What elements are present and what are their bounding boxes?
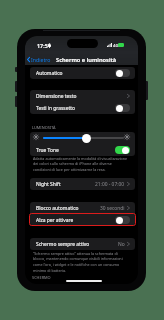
staticText: Testi in grassetto xyxy=(36,105,75,112)
staticText: “Schermo sempre attivo” attenua la scher… xyxy=(33,251,130,273)
button[interactable]: Automatico xyxy=(30,67,135,79)
staticText: Night Shift xyxy=(36,181,61,188)
staticText: 21:00 - 07:00 xyxy=(95,181,125,188)
button[interactable]: Indietro xyxy=(27,55,51,63)
staticText: Indietro xyxy=(31,56,51,63)
staticText: SCHERMO xyxy=(32,275,51,280)
staticText: Blocco automatico xyxy=(36,205,79,212)
staticText: Automatico xyxy=(36,70,63,77)
staticText: 4G xyxy=(113,43,119,49)
staticText: True Tone xyxy=(36,147,59,154)
staticText: Alza per attivare xyxy=(36,217,74,224)
staticText: Adatta automaticamente la modalità di vi… xyxy=(33,156,130,172)
staticText: Dimensione testo xyxy=(36,93,77,100)
button[interactable]: True Tone xyxy=(30,144,135,156)
button[interactable]: Dimensione testo xyxy=(30,90,135,102)
button[interactable]: Schermo sempre attivo xyxy=(30,238,135,250)
staticText: No xyxy=(118,241,125,248)
button[interactable]: Testi in grassetto xyxy=(30,102,135,114)
button[interactable]: Alza per attivare xyxy=(30,214,135,226)
button[interactable]: Night Shift xyxy=(30,178,135,190)
staticText: LUMINOSITÀ xyxy=(32,125,56,130)
button[interactable]: Blocco automatico xyxy=(30,202,135,214)
staticText: 30 secondi xyxy=(100,205,125,212)
staticText: 17:51 xyxy=(37,42,51,49)
staticText: Schermo sempre attivo xyxy=(36,241,90,248)
staticText: Schermo e luminosità xyxy=(56,56,117,64)
